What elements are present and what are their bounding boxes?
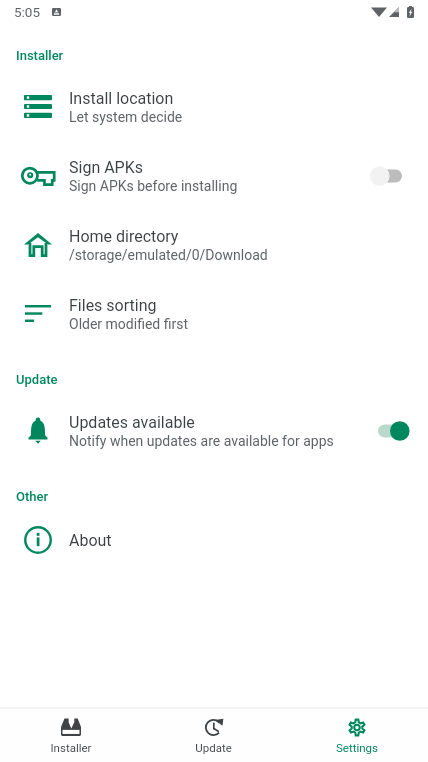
staticText: Installer (50, 741, 92, 755)
staticText: /storage/emulated/0/Download (69, 246, 268, 264)
staticText: Notify when updates are available for ap… (69, 432, 334, 450)
button[interactable]: Install location (0, 72, 428, 141)
button[interactable]: About (0, 513, 428, 566)
button[interactable]: Updates available (0, 396, 428, 465)
button[interactable]: Update (142, 709, 285, 762)
staticText: Let system decide (69, 108, 183, 126)
button[interactable]: Sign APKs (0, 141, 428, 210)
button[interactable]: Switch on (368, 411, 428, 451)
button[interactable]: Settings (285, 709, 428, 762)
staticText: Home directory (69, 226, 179, 246)
staticText: Settings (336, 741, 378, 755)
staticText: About (69, 530, 112, 550)
staticText: Install location (69, 88, 174, 108)
button[interactable]: Switch off (368, 156, 428, 196)
staticText: Other (16, 488, 49, 504)
staticText: Sign APKs (69, 157, 144, 177)
staticText: 5:05 (14, 4, 41, 20)
button[interactable]: Home directory (0, 210, 428, 279)
staticText: Update (16, 371, 58, 387)
button[interactable]: Files sorting (0, 279, 428, 348)
staticText: Files sorting (69, 295, 157, 315)
button[interactable]: Installer (0, 709, 142, 762)
staticText: Updates available (69, 412, 195, 432)
staticText: Sign APKs before installing (69, 177, 238, 195)
staticText: Update (195, 741, 232, 755)
staticText: Installer (16, 47, 64, 63)
staticText: Older modified first (69, 315, 188, 333)
